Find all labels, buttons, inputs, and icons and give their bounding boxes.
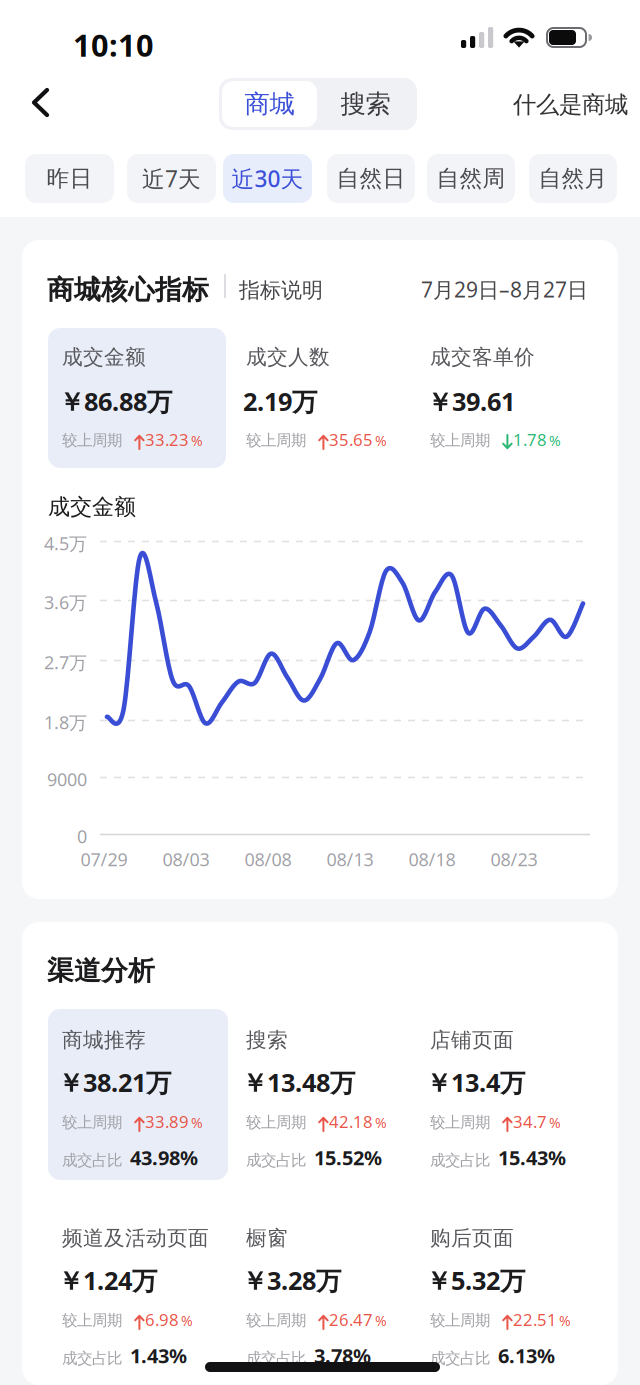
staticText: 7月29日–8月27日: [421, 275, 588, 304]
staticText: 08/13: [326, 847, 373, 871]
button[interactable]: Back: [21, 81, 77, 137]
staticText: %: [191, 1113, 203, 1132]
staticText: %: [191, 431, 203, 450]
staticText: 34.7: [513, 1110, 547, 1133]
staticText: 什么是商城: [513, 90, 628, 119]
staticText: 商城: [244, 88, 294, 120]
staticText: 26.47: [329, 1308, 373, 1331]
staticText: 10:10: [73, 24, 154, 66]
staticText: 42.18: [329, 1110, 373, 1133]
staticText: 较上周期: [246, 1112, 306, 1132]
staticText: 自然周: [436, 164, 505, 193]
staticText: %: [181, 1311, 193, 1330]
staticText: 成交占比: [246, 1150, 306, 1170]
staticText: 自然月: [538, 164, 607, 193]
staticText: 4.5万: [44, 531, 87, 555]
staticText: 频道及活动页面: [62, 1225, 209, 1251]
staticText: 1.78: [513, 428, 547, 451]
staticText: 成交占比: [430, 1348, 490, 1368]
staticText: 33.89: [145, 1110, 189, 1133]
staticText: 08/08: [244, 847, 291, 871]
button[interactable]: 商城: [222, 81, 317, 127]
staticText: %: [375, 1113, 387, 1132]
staticText: 购后页面: [430, 1225, 514, 1251]
staticText: 较上周期: [430, 1112, 490, 1132]
staticText: 1.43%: [130, 1342, 187, 1369]
staticText: %: [549, 1113, 561, 1132]
staticText: 08/03: [162, 847, 209, 871]
staticText: 0: [77, 824, 87, 848]
staticText: ￥38.21万: [58, 1065, 171, 1099]
button[interactable]: 昨日: [25, 154, 114, 203]
staticText: 商城推荐: [62, 1027, 146, 1053]
button[interactable]: 近7天: [127, 154, 216, 203]
staticText: 43.98%: [130, 1144, 198, 1171]
staticText: 2.19万: [243, 384, 317, 418]
staticText: 07/29: [80, 847, 127, 871]
staticText: ￥39.61: [427, 384, 515, 419]
staticText: ￥86.88万: [59, 384, 172, 418]
staticText: 成交金额: [62, 344, 146, 370]
staticText: 搜索: [340, 88, 390, 120]
staticText: 6.13%: [498, 1342, 555, 1369]
staticText: ￥3.28万: [242, 1263, 341, 1297]
staticText: 6.98: [145, 1308, 179, 1331]
staticText: 渠道分析: [47, 954, 155, 988]
staticText: 成交占比: [62, 1348, 122, 1368]
staticText: 商城核心指标: [47, 273, 209, 307]
button[interactable]: 指标说明: [233, 271, 329, 309]
staticText: ￥13.48万: [242, 1065, 355, 1099]
staticText: 较上周期: [246, 430, 306, 450]
staticText: 成交客单价: [430, 344, 535, 370]
button[interactable]: 什么是商城: [505, 82, 636, 127]
staticText: %: [559, 1311, 571, 1330]
button[interactable]: 搜索: [317, 81, 414, 127]
staticText: 橱窗: [246, 1225, 288, 1251]
button[interactable]: 近30天: [223, 154, 312, 203]
staticText: 成交人数: [246, 344, 330, 370]
staticText: ￥13.4万: [426, 1065, 525, 1099]
staticText: 成交占比: [430, 1150, 490, 1170]
staticText: 22.51: [513, 1308, 557, 1331]
staticText: 较上周期: [62, 430, 122, 450]
button[interactable]: 自然周: [427, 154, 515, 203]
staticText: %: [375, 1311, 387, 1330]
staticText: %: [375, 431, 387, 450]
staticText: 较上周期: [62, 1112, 122, 1132]
staticText: 较上周期: [430, 1310, 490, 1330]
staticText: 店铺页面: [430, 1027, 514, 1053]
staticText: 成交金额: [48, 493, 136, 521]
staticText: 3.6万: [44, 590, 87, 614]
staticText: 成交占比: [246, 1348, 306, 1368]
staticText: 自然日: [336, 164, 405, 193]
staticText: ￥5.32万: [426, 1263, 525, 1297]
staticText: ￥1.24万: [58, 1263, 157, 1297]
staticText: 较上周期: [430, 430, 490, 450]
staticText: 15.43%: [498, 1144, 566, 1171]
staticText: 较上周期: [246, 1310, 306, 1330]
button[interactable]: 自然日: [327, 154, 415, 203]
staticText: 较上周期: [62, 1310, 122, 1330]
staticText: 9000: [47, 767, 87, 791]
staticText: 搜索: [246, 1027, 288, 1053]
staticText: %: [549, 431, 561, 450]
staticText: 3.78%: [314, 1342, 371, 1369]
staticText: 成交占比: [62, 1150, 122, 1170]
staticText: 08/18: [408, 847, 455, 871]
staticText: 指标说明: [239, 277, 323, 303]
staticText: 2.7万: [44, 650, 87, 674]
staticText: 1.8万: [44, 710, 87, 734]
staticText: 35.65: [329, 428, 373, 451]
staticText: 昨日: [46, 164, 92, 193]
staticText: 近30天: [231, 163, 303, 194]
staticText: 08/23: [490, 847, 537, 871]
staticText: 近7天: [142, 163, 201, 194]
staticText: 15.52%: [314, 1144, 382, 1171]
button[interactable]: 自然月: [529, 154, 617, 203]
staticText: 33.23: [145, 428, 189, 451]
